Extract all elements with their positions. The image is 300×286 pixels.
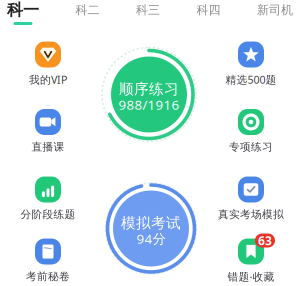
button[interactable]: 考前秘卷 bbox=[20, 239, 76, 283]
button[interactable]: 科四 bbox=[196, 1, 220, 25]
staticText: 科一 bbox=[7, 0, 39, 20]
staticText: 专项练习 bbox=[229, 140, 273, 153]
button[interactable]: 我的VIP bbox=[20, 42, 76, 86]
staticText: 我的VIP bbox=[29, 72, 67, 87]
staticText: 精选500题 bbox=[225, 72, 276, 87]
button[interactable]: 新司机 bbox=[257, 1, 293, 25]
button[interactable]: 精选500题 bbox=[223, 42, 279, 86]
button[interactable]: 直播课 bbox=[20, 109, 76, 153]
staticText: 模拟考试 bbox=[121, 214, 181, 232]
button[interactable]: 模拟考试 bbox=[101, 178, 201, 279]
staticText: 新司机 bbox=[257, 3, 293, 17]
staticText: 988/1916 bbox=[118, 96, 179, 113]
button[interactable]: 63 bbox=[223, 239, 279, 283]
button[interactable]: 分阶段练题 bbox=[20, 177, 76, 221]
staticText: 真实考场模拟 bbox=[218, 208, 284, 221]
staticText: 直播课 bbox=[31, 140, 64, 153]
staticText: 94分 bbox=[136, 230, 165, 247]
staticText: 错题·收藏 bbox=[227, 269, 274, 284]
button[interactable]: 专项练习 bbox=[223, 109, 279, 153]
button[interactable]: 真实考场模拟 bbox=[218, 177, 284, 221]
button[interactable]: 科一 bbox=[7, 1, 39, 25]
button[interactable]: 科三 bbox=[136, 1, 160, 25]
staticText: 分阶段练题 bbox=[20, 208, 75, 221]
staticText: 科二 bbox=[75, 3, 99, 17]
staticText: 顺序练习 bbox=[119, 80, 179, 98]
staticText: 科三 bbox=[136, 3, 160, 17]
staticText: 考前秘卷 bbox=[26, 270, 70, 283]
button[interactable]: 顺序练习 bbox=[98, 44, 200, 145]
button[interactable]: 科二 bbox=[75, 1, 99, 25]
staticText: 63 bbox=[258, 232, 272, 248]
staticText: 科四 bbox=[196, 3, 220, 17]
